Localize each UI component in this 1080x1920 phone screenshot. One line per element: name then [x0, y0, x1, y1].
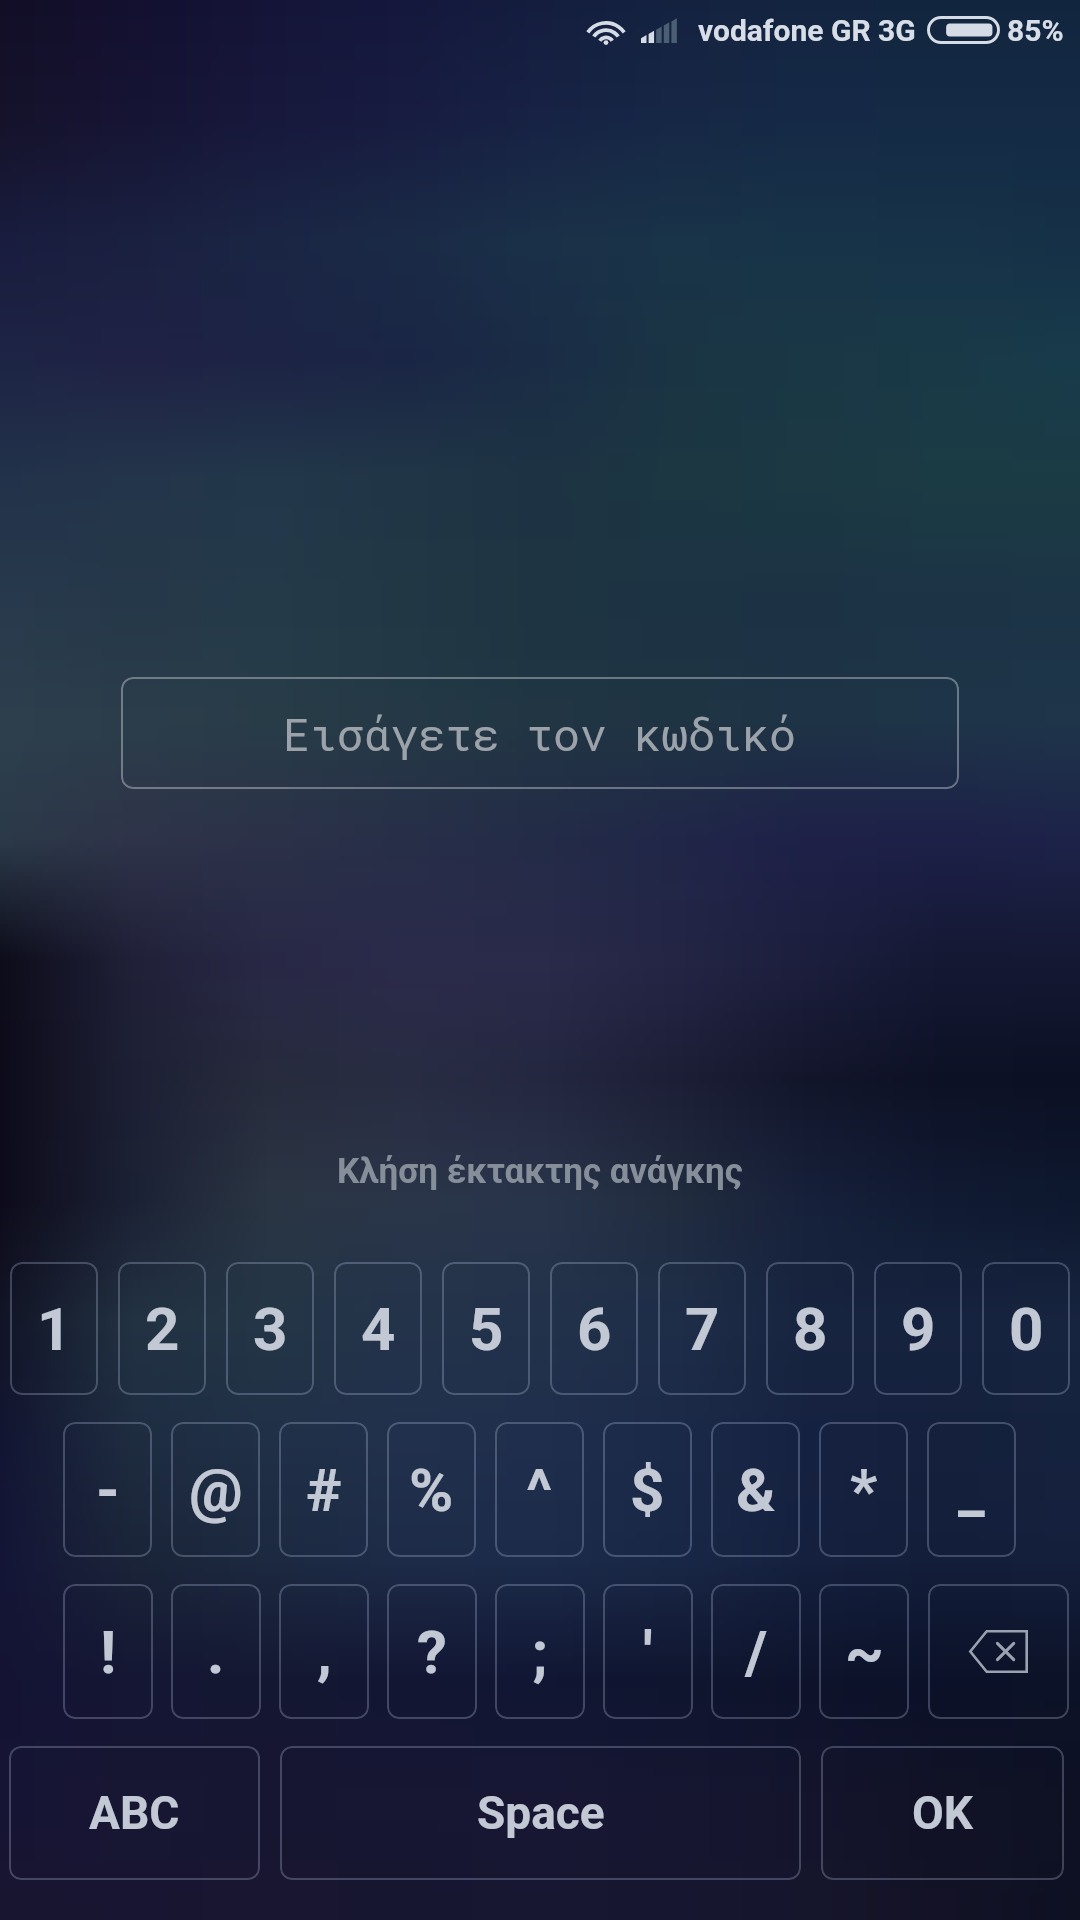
- button[interactable]: ;: [495, 1584, 585, 1719]
- staticText: 6: [577, 1294, 612, 1364]
- staticText: /: [745, 1617, 768, 1687]
- staticText: $: [630, 1455, 665, 1525]
- staticText: ~: [845, 1617, 884, 1687]
- staticText: 4: [361, 1294, 396, 1364]
- button[interactable]: /: [711, 1584, 801, 1719]
- button[interactable]: Κλήση έκτακτης ανάγκης: [313, 1145, 767, 1198]
- button[interactable]: -: [63, 1422, 152, 1557]
- staticText: _: [958, 1455, 985, 1525]
- other: Wi-Fi signal: [584, 12, 628, 48]
- button[interactable]: ~: [819, 1584, 909, 1719]
- button[interactable]: 6: [550, 1262, 638, 1395]
- button[interactable]: Backspace: [928, 1584, 1069, 1719]
- staticText: .: [207, 1617, 225, 1687]
- button[interactable]: $: [603, 1422, 692, 1557]
- button[interactable]: .: [171, 1584, 261, 1719]
- button[interactable]: _: [927, 1422, 1016, 1557]
- button[interactable]: 7: [658, 1262, 746, 1395]
- staticText: Κλήση έκτακτης ανάγκης: [337, 1151, 743, 1192]
- button[interactable]: 8: [766, 1262, 854, 1395]
- button[interactable]: @: [171, 1422, 260, 1557]
- button[interactable]: ,: [279, 1584, 369, 1719]
- staticText: Space: [477, 1786, 605, 1840]
- staticText: &: [736, 1455, 776, 1525]
- staticText: ^: [526, 1455, 553, 1525]
- staticText: OK: [912, 1786, 973, 1840]
- staticText: ': [643, 1617, 653, 1687]
- button[interactable]: 3: [226, 1262, 314, 1395]
- staticText: -: [96, 1455, 120, 1525]
- button[interactable]: *: [819, 1422, 908, 1557]
- button[interactable]: &: [711, 1422, 800, 1557]
- button[interactable]: 9: [874, 1262, 962, 1395]
- staticText: ?: [417, 1617, 447, 1687]
- button[interactable]: %: [387, 1422, 476, 1557]
- button[interactable]: ': [603, 1584, 693, 1719]
- button[interactable]: 1: [10, 1262, 98, 1395]
- staticText: 8: [793, 1294, 828, 1364]
- button[interactable]: !: [63, 1584, 153, 1719]
- button[interactable]: #: [279, 1422, 368, 1557]
- staticText: %: [409, 1455, 454, 1525]
- button[interactable]: ?: [387, 1584, 477, 1719]
- staticText: 1: [37, 1294, 72, 1364]
- button[interactable]: OK: [821, 1746, 1064, 1880]
- other: Mobile signal: [641, 16, 679, 43]
- button[interactable]: Space: [280, 1746, 801, 1880]
- staticText: !: [100, 1617, 117, 1687]
- button[interactable]: ^: [495, 1422, 584, 1557]
- staticText: 3: [253, 1294, 288, 1364]
- staticText: 7: [685, 1294, 720, 1364]
- button[interactable]: Εισάγετε τον κωδικό: [121, 677, 959, 789]
- staticText: 5: [469, 1294, 504, 1364]
- button[interactable]: 5: [442, 1262, 530, 1395]
- staticText: *: [850, 1455, 878, 1525]
- staticText: @: [189, 1455, 243, 1525]
- button[interactable]: 2: [118, 1262, 206, 1395]
- staticText: #: [306, 1455, 342, 1525]
- staticText: 9: [901, 1294, 936, 1364]
- staticText: 2: [145, 1294, 180, 1364]
- button[interactable]: ABC: [9, 1746, 260, 1880]
- staticText: ;: [532, 1617, 548, 1687]
- staticText: ,: [317, 1617, 332, 1687]
- staticText: Εισάγετε τον κωδικό: [283, 704, 797, 763]
- other: Battery 85 percent: [927, 16, 1000, 44]
- staticText: vodafone GR 3G: [698, 13, 916, 48]
- button[interactable]: 0: [982, 1262, 1070, 1395]
- staticText: 0: [1009, 1294, 1044, 1364]
- staticText: 85%: [1007, 13, 1064, 48]
- button[interactable]: 4: [334, 1262, 422, 1395]
- staticText: ABC: [89, 1786, 180, 1840]
